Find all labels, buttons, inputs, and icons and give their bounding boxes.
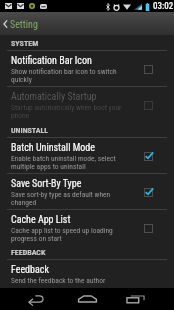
staticText: Startup automatically when boot your pho… [11,103,133,120]
button[interactable]: Cache App List [0,210,174,246]
staticText: Cache App List [11,214,71,226]
button[interactable]: Feedback [0,260,174,288]
staticText: Cache app list to speed up loading progr… [11,226,133,243]
staticText: Notification Bar Icon [11,55,92,67]
staticText: 03:02 [153,1,174,12]
staticText: Automatically Startup [11,91,97,103]
staticText: Feedback [11,264,49,276]
button[interactable]: Setting [0,12,174,35]
staticText: Show notification bar icon to switch qui… [11,67,133,84]
staticText: FEEDBACK [11,248,46,257]
staticText: Save Sort-By Type [11,178,82,190]
button[interactable]: Back [0,288,58,310]
staticText: UNINSTALL [11,126,49,135]
button[interactable]: Automatically Startup [0,87,174,123]
staticText: Batch Uninstall Mode [11,142,95,154]
button[interactable]: Home [58,288,116,310]
button[interactable]: Notification Bar Icon [0,51,174,87]
staticText: Send the feedback to the author [11,276,106,285]
staticText: Save sort-by type as default when change… [11,190,133,207]
button[interactable]: Batch Uninstall Mode [0,138,174,174]
button[interactable]: Save Sort-By Type [0,174,174,210]
staticText: SYSTEM [11,39,39,48]
button[interactable]: Recent apps [116,288,174,310]
staticText: Enable batch uninstall mode, select mult… [11,154,133,171]
staticText: Setting [10,19,38,31]
